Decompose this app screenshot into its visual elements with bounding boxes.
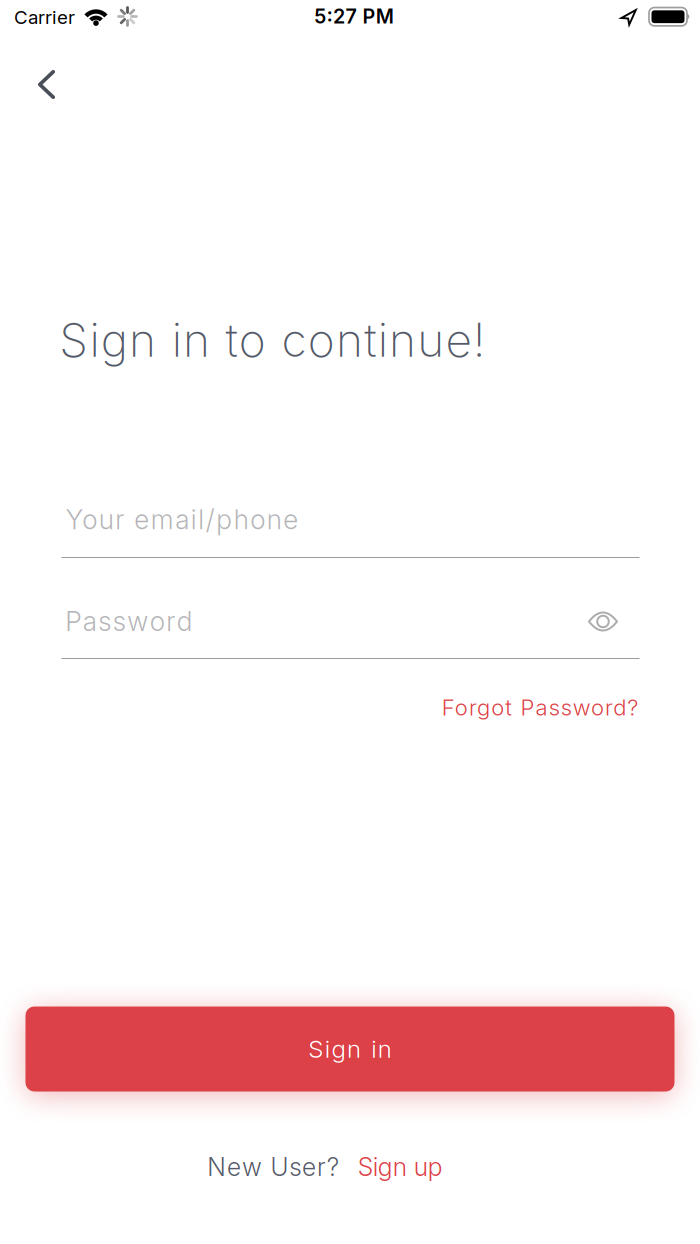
staticText: Forgot Password? (442, 694, 638, 721)
staticText: 5:27 PM (314, 4, 394, 28)
staticText: Carrier (14, 6, 75, 28)
staticText: Your email/phone (66, 503, 298, 535)
button[interactable]: Show password (581, 602, 625, 640)
staticText: Sign in (308, 1034, 392, 1064)
staticText: New User? (207, 1152, 339, 1182)
button[interactable]: Back (18, 56, 74, 112)
button[interactable]: Sign in (25, 1006, 674, 1091)
staticText: Sign up (358, 1152, 443, 1182)
staticText: Sign in to continue! (59, 312, 486, 368)
button[interactable]: Sign up (358, 1152, 443, 1182)
staticText: Password (65, 605, 193, 637)
button[interactable]: Forgot Password? (442, 694, 638, 721)
